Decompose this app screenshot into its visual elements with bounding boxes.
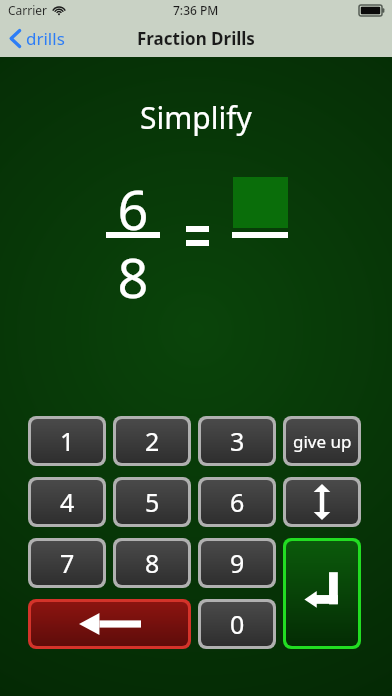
staticText: 1 bbox=[60, 424, 75, 458]
staticText: 4 bbox=[60, 485, 75, 519]
staticText: 6 bbox=[113, 172, 153, 246]
button[interactable]: 5 bbox=[113, 477, 191, 527]
staticText: 5 bbox=[145, 485, 160, 519]
staticText: drills bbox=[26, 27, 65, 50]
button[interactable]: 3 bbox=[198, 416, 276, 466]
staticText: 7 bbox=[60, 546, 75, 580]
staticText: Carrier bbox=[8, 2, 48, 18]
button[interactable]: 8 bbox=[113, 538, 191, 588]
button[interactable]: 0 bbox=[198, 599, 276, 649]
button[interactable]: 2 bbox=[113, 416, 191, 466]
staticText: 7:36 PM bbox=[173, 2, 219, 18]
staticText: Fraction Drills bbox=[137, 27, 255, 50]
staticText: give up bbox=[293, 430, 352, 453]
button[interactable]: 9 bbox=[198, 538, 276, 588]
staticText: 3 bbox=[230, 424, 245, 458]
staticText: 9 bbox=[230, 546, 245, 580]
button[interactable]: Enter bbox=[283, 538, 361, 649]
staticText: 8 bbox=[145, 546, 160, 580]
button[interactable]: Backspace bbox=[28, 599, 191, 649]
staticText: 0 bbox=[230, 607, 245, 641]
staticText: 8 bbox=[113, 240, 153, 314]
button[interactable]: 6 bbox=[198, 477, 276, 527]
staticText: 2 bbox=[145, 424, 160, 458]
button[interactable]: give up bbox=[283, 416, 361, 466]
staticText: 6 bbox=[230, 485, 245, 519]
staticText: Simplify bbox=[0, 97, 392, 138]
button[interactable]: Switch numerator or denominator bbox=[283, 477, 361, 527]
button[interactable]: 4 bbox=[28, 477, 106, 527]
button[interactable]: 7 bbox=[28, 538, 106, 588]
button[interactable]: 1 bbox=[28, 416, 106, 466]
button[interactable]: drills bbox=[0, 23, 77, 54]
